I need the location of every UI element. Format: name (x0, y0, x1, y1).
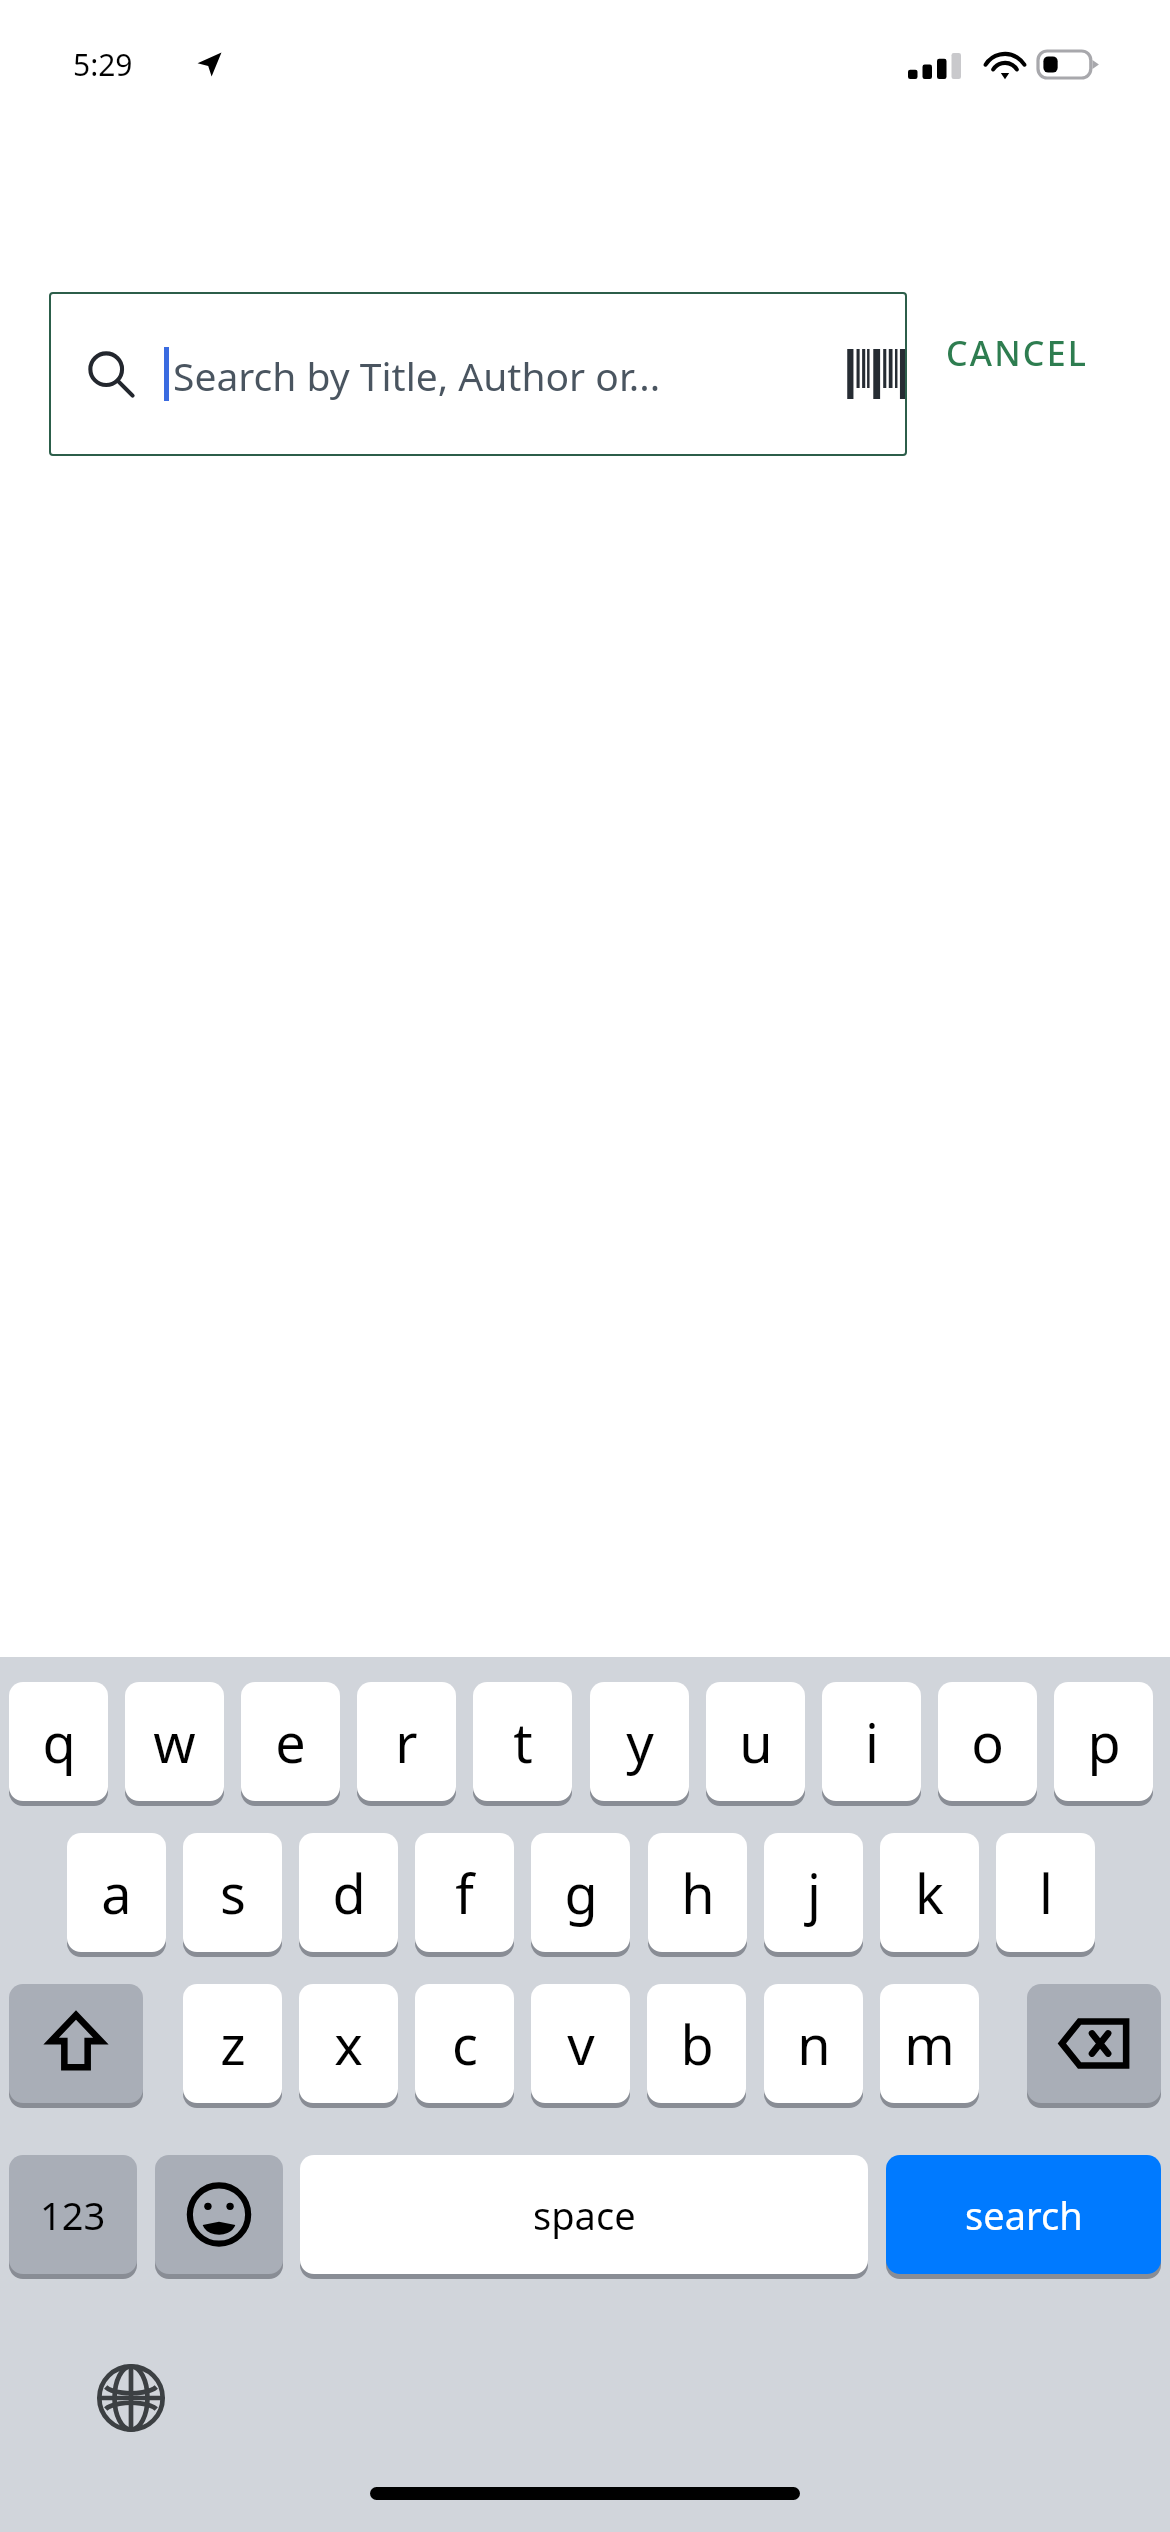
button[interactable]: h (648, 1833, 747, 1952)
button[interactable]: space (300, 2155, 868, 2274)
button[interactable]: Emoji (155, 2155, 283, 2274)
button[interactable]: k (880, 1833, 979, 1952)
staticText: CANCEL (946, 330, 1089, 376)
staticText: q (42, 1705, 76, 1779)
button[interactable]: f (415, 1833, 514, 1952)
staticText: s (220, 1856, 246, 1930)
staticText: x (334, 2007, 363, 2081)
button[interactable]: w (125, 1682, 224, 1801)
staticText: n (797, 2007, 831, 2081)
button[interactable]: r (357, 1682, 456, 1801)
staticText: w (153, 1705, 196, 1779)
button[interactable]: y (590, 1682, 689, 1801)
button[interactable]: e (241, 1682, 340, 1801)
staticText: j (807, 1856, 821, 1930)
button[interactable]: j (764, 1833, 863, 1952)
staticText: d (332, 1856, 366, 1930)
button[interactable]: 123 (9, 2155, 137, 2274)
staticText: Search by Title, Author or... (173, 349, 661, 402)
button[interactable]: s (183, 1833, 282, 1952)
staticText: g (564, 1856, 598, 1930)
staticText: search (965, 2189, 1083, 2241)
staticText: b (680, 2007, 714, 2081)
button[interactable]: x (299, 1984, 398, 2103)
staticText: space (533, 2189, 636, 2241)
staticText: v (567, 2007, 595, 2081)
staticText: p (1087, 1705, 1121, 1779)
button[interactable]: p (1054, 1682, 1153, 1801)
staticText: u (739, 1705, 773, 1779)
button[interactable]: t (473, 1682, 572, 1801)
staticText: k (915, 1856, 944, 1930)
staticText: c (452, 2007, 478, 2081)
button[interactable]: c (415, 1984, 514, 2103)
button[interactable]: u (706, 1682, 805, 1801)
button[interactable]: CANCEL (946, 330, 1089, 376)
button[interactable]: n (764, 1984, 863, 2103)
button[interactable]: Backspace (1027, 1984, 1161, 2103)
button[interactable]: o (938, 1682, 1037, 1801)
other: Scan barcode (846, 349, 908, 399)
button[interactable]: b (647, 1984, 746, 2103)
button[interactable]: i (822, 1682, 921, 1801)
staticText: o (971, 1705, 1004, 1779)
button[interactable]: Change keyboard (95, 2362, 167, 2434)
button[interactable]: v (531, 1984, 630, 2103)
staticText: m (904, 2007, 955, 2081)
staticText: i (865, 1705, 879, 1779)
button[interactable]: l (996, 1833, 1095, 1952)
button[interactable]: a (67, 1833, 166, 1952)
other: Search (87, 350, 135, 398)
button[interactable]: Shift (9, 1984, 143, 2103)
staticText: 123 (40, 2189, 106, 2241)
staticText: z (220, 2007, 246, 2081)
staticText: 5:29 (73, 44, 133, 85)
staticText: t (513, 1705, 533, 1779)
button[interactable]: z (183, 1984, 282, 2103)
staticText: h (681, 1856, 715, 1930)
button[interactable]: m (880, 1984, 979, 2103)
button[interactable]: q (9, 1682, 108, 1801)
staticText: f (455, 1856, 474, 1930)
staticText: a (101, 1856, 132, 1930)
staticText: r (395, 1705, 418, 1779)
button[interactable]: Search (49, 292, 907, 456)
staticText: l (1039, 1856, 1053, 1930)
staticText: y (626, 1705, 654, 1779)
button[interactable]: search (886, 2155, 1161, 2274)
button[interactable]: d (299, 1833, 398, 1952)
staticText: e (275, 1705, 306, 1779)
button[interactable]: g (531, 1833, 630, 1952)
